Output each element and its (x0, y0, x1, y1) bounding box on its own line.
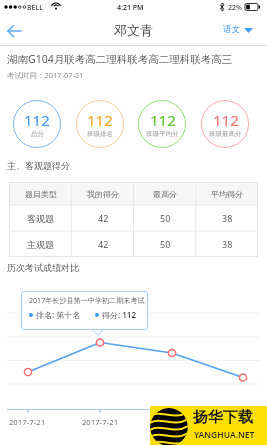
staticText: 2017年长沙县第一中学初二期末考试 (29, 295, 145, 305)
staticText: 2017-7-21 (5, 417, 49, 428)
staticText: 扬华下载 (193, 408, 253, 427)
staticText: 我的得分 (87, 189, 119, 199)
staticText: YANGHUA.NET (194, 429, 255, 441)
staticText: 语文 (223, 24, 240, 35)
button[interactable]: 语文 (223, 24, 253, 35)
button[interactable]: 2017年长沙县第一中学初二期末考试 (21, 291, 148, 330)
button[interactable]: 扬华下载 (150, 406, 267, 445)
staticText: 2017-7-21 (78, 417, 122, 428)
staticText: 4:21 PM (117, 3, 144, 13)
staticText: 总分 (31, 130, 44, 138)
staticText: 50 (160, 212, 171, 224)
staticText: 42 (98, 212, 109, 224)
button[interactable]: 112 (138, 100, 186, 148)
staticText: 112 (150, 110, 176, 130)
button[interactable]: 112 (201, 100, 249, 148)
staticText: 112 (213, 110, 239, 130)
staticText: 历次考试成绩对比 (7, 262, 79, 273)
staticText: 50 (160, 238, 171, 250)
staticText: 112 (87, 110, 113, 130)
staticText: 主、客观题得分 (7, 160, 70, 171)
staticText: 112 (24, 110, 50, 130)
button[interactable]: 主观题 (9, 231, 258, 257)
staticText: 湖南G104月联考高二理科联考高二理科联考高三 (7, 52, 233, 66)
staticText: 42 (98, 238, 109, 250)
staticText: 题目类型 (25, 189, 57, 199)
button[interactable]: 112 (13, 100, 61, 148)
staticText: 平均得分 (211, 189, 243, 199)
staticText: 38 (222, 212, 233, 224)
staticText: 38 (222, 238, 233, 250)
button[interactable]: 112 (76, 100, 124, 148)
button[interactable]: 题目类型 (9, 182, 258, 205)
staticText: 客观题 (27, 213, 54, 224)
staticText: BELL (27, 3, 43, 13)
staticText: 班级平均分 (146, 130, 179, 138)
staticText: 最高分 (153, 189, 177, 199)
staticText: 22% (228, 3, 242, 13)
button[interactable] (0, 14, 30, 45)
staticText: 考试时间：2017-07-21 (7, 70, 84, 80)
staticText: 班级排名 (87, 130, 113, 138)
button[interactable]: 客观题 (9, 205, 258, 231)
staticText: 主观题 (27, 239, 54, 250)
staticText: 班级最高分 (209, 130, 242, 138)
staticText: 得分: 112 (102, 309, 137, 320)
staticText: 邓文青 (114, 22, 153, 38)
staticText: 排名: 第十名 (36, 309, 81, 320)
